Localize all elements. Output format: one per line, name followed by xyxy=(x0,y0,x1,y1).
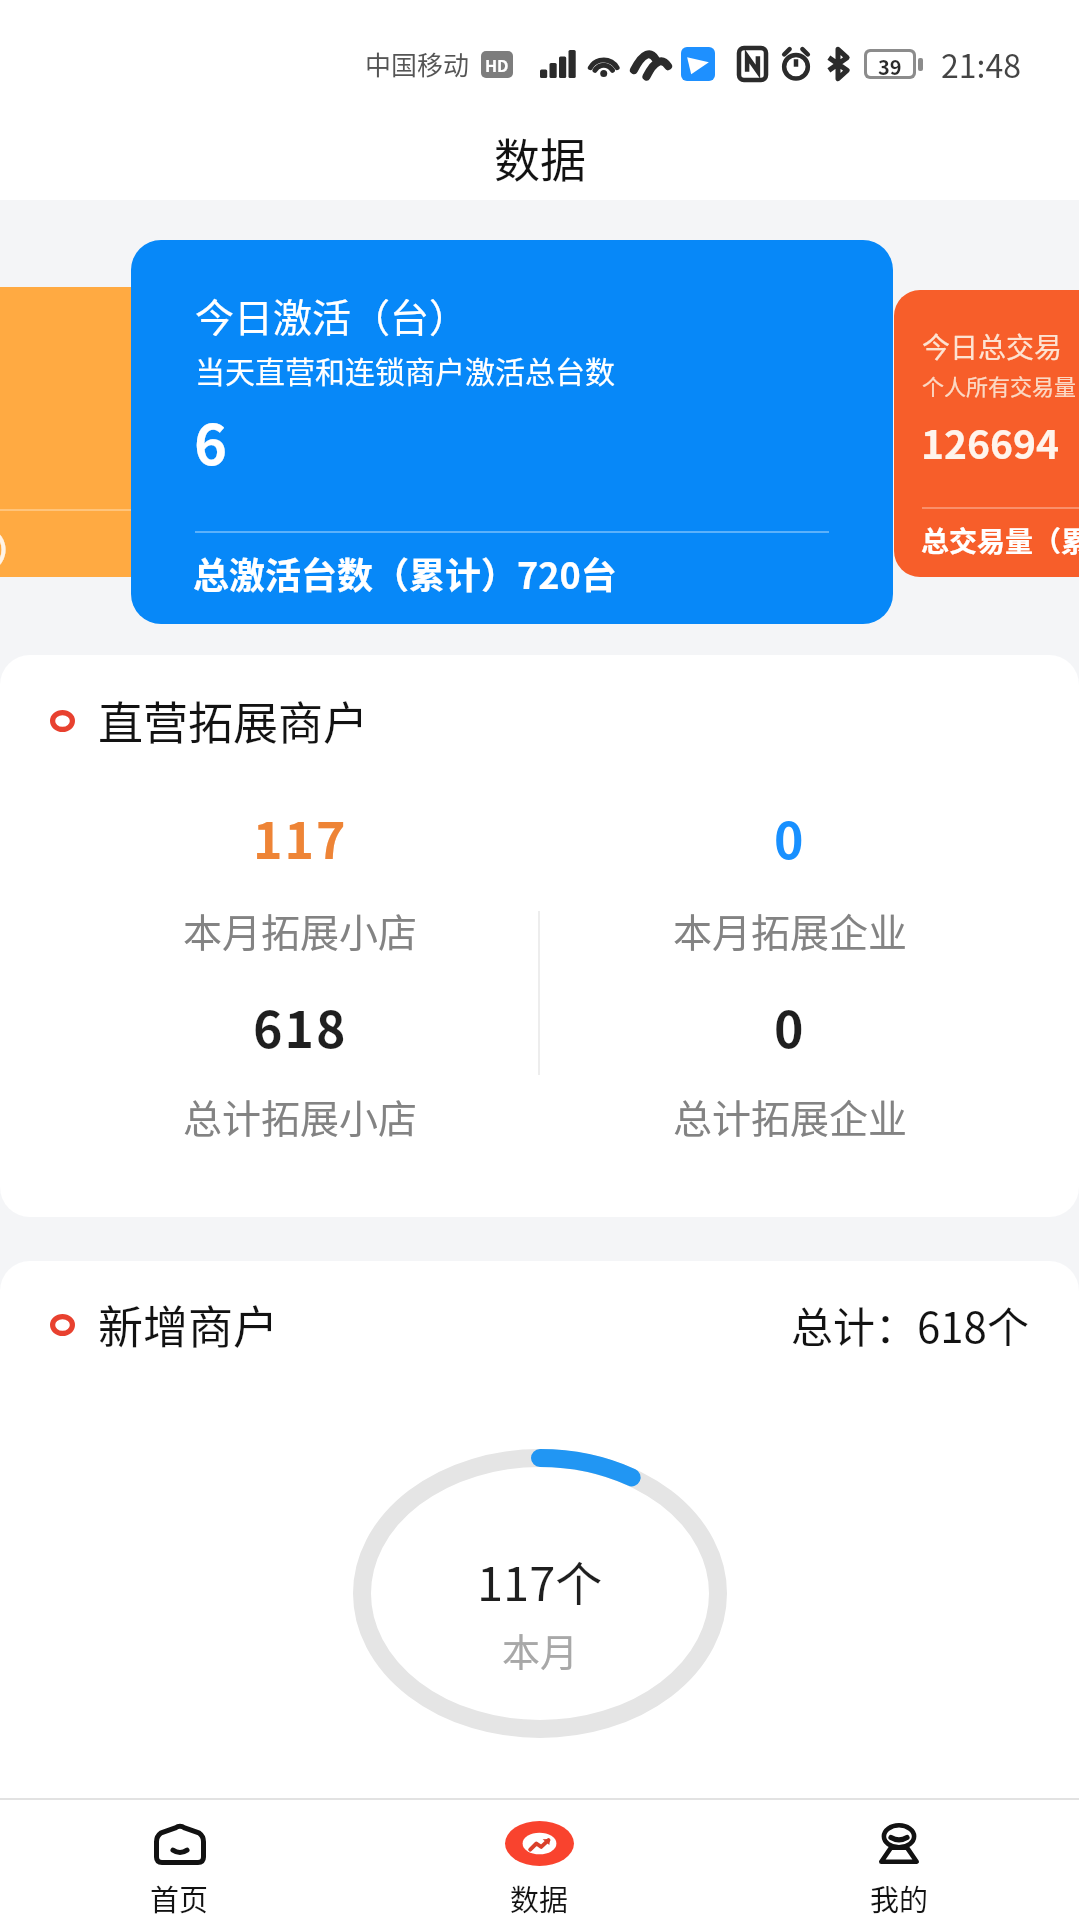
staticText: 直营拓展商户 xyxy=(98,688,369,753)
staticText: 39 xyxy=(878,52,902,76)
staticText: 总激活台数（累计）720台 xyxy=(193,547,617,599)
staticText: 数据 xyxy=(494,124,586,191)
staticText: 数据 xyxy=(510,1877,569,1919)
button[interactable]: Data xyxy=(359,1800,719,1919)
staticText: 总交易量（累 xyxy=(921,520,1079,561)
staticText: 21:48 xyxy=(941,41,1021,87)
staticText: 0 xyxy=(774,990,806,1062)
staticText: 本月拓展小店 xyxy=(183,902,418,958)
staticText: 新增商户 xyxy=(98,1292,279,1357)
staticText: 126694 xyxy=(921,414,1060,470)
button[interactable]: Home xyxy=(0,1800,359,1919)
staticText: HD xyxy=(485,53,509,76)
staticText: 6 xyxy=(194,400,228,481)
staticText: 今日激活（台） xyxy=(195,287,469,343)
staticText: 618 xyxy=(253,990,348,1062)
staticText: 我的 xyxy=(870,1877,929,1919)
staticText: 总计：618个 xyxy=(791,1294,1029,1355)
staticText: 中国移动 xyxy=(365,45,470,83)
staticText: 117个 xyxy=(477,1546,603,1614)
button[interactable]: 今日激活（台） xyxy=(131,240,893,624)
button[interactable]: Profile xyxy=(719,1800,1079,1919)
staticText: 总计拓展小店 xyxy=(183,1088,418,1144)
staticText: 首页 xyxy=(150,1877,209,1919)
staticText: 0 xyxy=(774,801,806,873)
staticText: 117 xyxy=(253,801,348,873)
staticText: 今日总交易 xyxy=(922,326,1063,367)
staticText: 本月 xyxy=(502,1622,579,1677)
staticText: 额） xyxy=(0,524,28,573)
staticText: 总计拓展企业 xyxy=(673,1088,908,1144)
staticText: 个人所有交易量 xyxy=(922,369,1077,401)
staticText: 本月拓展企业 xyxy=(673,902,908,958)
staticText: 当天直营和连锁商户激活总台数 xyxy=(195,348,615,391)
